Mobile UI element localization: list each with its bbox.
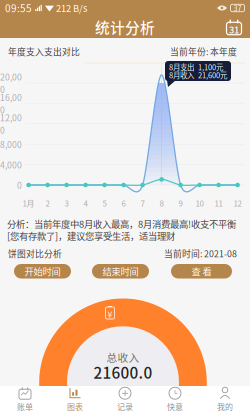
staticText: 2 (46, 197, 50, 209)
staticText: 12,000 (0, 111, 22, 136)
button[interactable]: 图表 (50, 386, 100, 413)
staticText: 8 (160, 197, 164, 209)
button[interactable]: 快意 (150, 386, 200, 413)
staticText: 4,000 (0, 158, 22, 171)
staticText: 8月支出 (169, 62, 194, 72)
staticText: 212 B/s (56, 1, 87, 15)
staticText: 当前年份: 本年度 (170, 45, 237, 58)
staticText: 6 (122, 197, 126, 209)
staticText: 7 (141, 197, 145, 209)
button[interactable]: 账单 (0, 386, 50, 413)
staticText: 09:55 (5, 1, 32, 15)
button[interactable]: 我的 (200, 386, 250, 413)
staticText: 5 (103, 197, 107, 209)
staticText: 开始时间 (24, 264, 60, 278)
staticText: 统计分析 (95, 16, 155, 38)
staticText: 8月收入 (169, 70, 194, 80)
staticText: 快意 (167, 401, 183, 412)
staticText: 分析：当前年度中8月收入最高，8月消费最高!收支不平衡 (7, 217, 236, 230)
staticText: 当前时间: 2021-08 (164, 247, 237, 260)
button[interactable]: 查 看 (171, 264, 232, 278)
staticText: 20,000 (0, 70, 22, 96)
staticText: 1,100元 (198, 62, 223, 72)
staticText: 结束时间 (102, 264, 138, 278)
staticText: 31 (229, 23, 239, 36)
staticText: 我的 (217, 401, 233, 412)
staticText: 9 (179, 197, 183, 209)
staticText: 37 (233, 3, 241, 13)
staticText: 记录 (117, 401, 133, 412)
staticText: 11 (215, 197, 223, 209)
staticText: 4 (84, 197, 88, 209)
staticText: 3 (65, 197, 69, 209)
button[interactable]: Select month (218, 16, 250, 38)
button[interactable]: 结束时间 (92, 264, 149, 278)
button[interactable]: 记录 (100, 386, 150, 413)
staticText: ¥ (107, 308, 112, 320)
staticText: 总收入 (106, 349, 139, 365)
staticText: 0 (17, 179, 22, 191)
staticText: 12 (234, 197, 242, 209)
staticText: 1月 (23, 197, 35, 209)
staticText: 年度支入支出对比 (8, 45, 80, 58)
staticText: 查 看 (191, 264, 211, 278)
staticText: 21600.0 (93, 361, 152, 383)
staticText: 21,600元 (198, 70, 227, 80)
button[interactable]: 开始时间 (14, 264, 71, 278)
staticText: 图表 (67, 401, 83, 412)
staticText: 饼图对比分析 (8, 247, 62, 260)
staticText: [您有存款了]，建议您享受生活，适当理财 (7, 229, 175, 242)
staticText: 8,000 (0, 138, 22, 150)
staticText: 账单 (17, 401, 33, 412)
staticText: 10 (196, 197, 204, 209)
staticText: 16,000 (0, 91, 22, 116)
